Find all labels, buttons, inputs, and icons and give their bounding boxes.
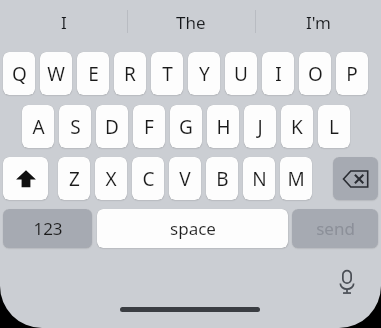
staticText: S	[70, 114, 81, 140]
button[interactable]: K	[281, 105, 313, 148]
button[interactable]: C	[132, 157, 164, 200]
staticText: V	[179, 166, 191, 192]
staticText: T	[162, 61, 173, 87]
staticText: U	[234, 61, 248, 87]
staticText: send	[316, 217, 355, 240]
staticText: Z	[69, 166, 80, 192]
button[interactable]: B	[206, 157, 238, 200]
staticText: Y	[199, 61, 210, 87]
staticText: P	[346, 61, 358, 87]
staticText: J	[257, 114, 263, 140]
staticText: A	[32, 114, 45, 140]
staticText: E	[88, 61, 99, 87]
staticText: L	[329, 114, 339, 140]
button[interactable]: T	[151, 52, 183, 95]
button[interactable]: O	[299, 52, 331, 95]
button[interactable]: U	[225, 52, 257, 95]
staticText: H	[216, 114, 231, 140]
staticText: R	[124, 61, 136, 87]
staticText: D	[105, 114, 119, 140]
staticText: N	[252, 166, 267, 192]
button[interactable]: R	[114, 52, 146, 95]
staticText: I	[61, 11, 67, 34]
button[interactable]: H	[207, 105, 239, 148]
staticText: B	[216, 166, 229, 192]
staticText: M	[287, 166, 305, 192]
staticText: X	[105, 166, 117, 192]
button[interactable]: space	[97, 209, 288, 248]
button[interactable]: V	[169, 157, 201, 200]
button[interactable]: Shift	[3, 157, 48, 200]
button[interactable]: N	[243, 157, 275, 200]
button[interactable]: Q	[3, 52, 35, 95]
button[interactable]: Dictation	[330, 265, 364, 299]
staticText: O	[308, 61, 323, 87]
staticText: The	[176, 11, 206, 34]
staticText: I	[275, 61, 282, 87]
button[interactable]: L	[318, 105, 350, 148]
button[interactable]: F	[133, 105, 165, 148]
button[interactable]: P	[336, 52, 368, 95]
staticText: Q	[12, 61, 27, 87]
button[interactable]: J	[244, 105, 276, 148]
staticText: C	[142, 166, 155, 192]
button[interactable]: Backspace	[333, 157, 378, 200]
button[interactable]: D	[96, 105, 128, 148]
staticText: F	[144, 114, 154, 140]
button[interactable]: The	[136, 2, 246, 42]
staticText: G	[179, 114, 193, 140]
button[interactable]: send	[292, 209, 378, 248]
staticText: K	[291, 114, 303, 140]
staticText: I'm	[306, 11, 331, 34]
button[interactable]: S	[59, 105, 91, 148]
staticText: space	[170, 217, 216, 240]
button[interactable]: A	[22, 105, 54, 148]
button[interactable]: Z	[58, 157, 90, 200]
button[interactable]: I	[9, 2, 119, 42]
button[interactable]: W	[40, 52, 72, 95]
staticText: 123	[33, 217, 63, 240]
button[interactable]: G	[170, 105, 202, 148]
button[interactable]: I'm	[263, 2, 373, 42]
staticText: W	[47, 61, 65, 87]
button[interactable]: E	[77, 52, 109, 95]
button[interactable]: Y	[188, 52, 220, 95]
button[interactable]: 123	[3, 209, 92, 248]
button[interactable]: M	[280, 157, 312, 200]
button[interactable]: X	[95, 157, 127, 200]
button[interactable]: I	[262, 52, 294, 95]
